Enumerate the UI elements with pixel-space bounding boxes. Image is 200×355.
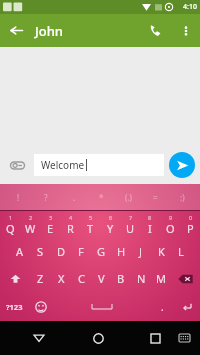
button[interactable]: ? — [32, 184, 60, 211]
staticText: O — [166, 221, 175, 236]
button[interactable]: 3 — [40, 211, 60, 238]
button[interactable]: 1 — [0, 211, 20, 238]
staticText: P — [187, 221, 194, 236]
button[interactable]: Send — [164, 146, 200, 184]
button[interactable]: Call — [139, 14, 172, 47]
button[interactable]: H — [111, 238, 131, 265]
staticText: C — [78, 271, 85, 286]
button[interactable]: (.) — [115, 184, 142, 211]
staticText: 7 — [129, 214, 133, 221]
button[interactable]: V — [91, 265, 111, 292]
button[interactable]: 5 — [80, 211, 100, 238]
staticText: Welcome — [41, 158, 85, 172]
button[interactable]: Shift — [0, 265, 30, 292]
button[interactable]: Enter — [174, 292, 200, 321]
button[interactable]: Back — [22, 321, 56, 355]
staticText: :) — [180, 192, 185, 203]
button[interactable]: D — [51, 238, 71, 265]
staticText: John — [35, 22, 64, 40]
button[interactable]: Attach — [0, 148, 34, 182]
staticText: M — [156, 271, 166, 286]
button[interactable]: * — [88, 184, 115, 211]
staticText: 0 — [189, 214, 193, 221]
staticText: X — [58, 271, 65, 286]
staticText: G — [97, 244, 106, 259]
staticText: T — [87, 221, 94, 236]
staticText: . — [161, 300, 164, 314]
staticText: K — [158, 244, 165, 259]
staticText: W — [25, 221, 36, 236]
staticText: * — [99, 192, 104, 203]
button[interactable]: . — [60, 184, 88, 211]
staticText: B — [117, 271, 125, 286]
staticText: L — [178, 244, 184, 259]
staticText: Z — [37, 271, 44, 286]
button[interactable]: J — [131, 238, 151, 265]
button[interactable]: Backspace — [171, 265, 200, 292]
staticText: ? — [44, 192, 48, 203]
button[interactable]: 0 — [180, 211, 200, 238]
staticText: . — [73, 192, 76, 203]
staticText: 8 — [148, 214, 152, 221]
staticText: 1 — [9, 214, 13, 221]
button[interactable]: . — [150, 292, 174, 321]
staticText: D — [57, 244, 66, 259]
button[interactable]: S — [30, 238, 51, 265]
staticText: S — [37, 244, 44, 259]
button[interactable]: L — [171, 238, 191, 265]
staticText: E — [47, 221, 54, 236]
button[interactable]: A — [9, 238, 30, 265]
staticText: N — [137, 271, 146, 286]
button[interactable]: Switch keyboard — [170, 324, 198, 352]
button[interactable]: Welcome — [34, 154, 164, 176]
staticText: 4 — [69, 214, 73, 221]
button[interactable]: N — [131, 265, 151, 292]
button[interactable]: ! — [4, 184, 32, 211]
staticText: Y — [107, 221, 114, 236]
staticText: R — [67, 221, 74, 236]
button[interactable]: F — [71, 238, 91, 265]
staticText: (.) — [125, 192, 132, 203]
staticText: Q — [6, 221, 15, 236]
staticText: A — [16, 244, 24, 259]
button[interactable]: C — [71, 265, 91, 292]
button[interactable]: K — [151, 238, 171, 265]
button[interactable]: X — [51, 265, 71, 292]
staticText: = — [153, 192, 158, 203]
staticText: 3 — [49, 214, 53, 221]
button[interactable]: Home — [81, 321, 115, 355]
staticText: 4:10 — [183, 2, 197, 12]
button[interactable]: M — [151, 265, 171, 292]
staticText: H — [117, 244, 126, 259]
button[interactable]: = — [142, 184, 169, 211]
button[interactable]: ?123 — [0, 292, 29, 321]
button[interactable]: G — [91, 238, 111, 265]
button[interactable]: 6 — [100, 211, 120, 238]
button[interactable]: Recents — [140, 323, 170, 353]
staticText: I — [148, 221, 152, 236]
staticText: 9 — [169, 214, 173, 221]
button[interactable]: 4 — [60, 211, 80, 238]
staticText: F — [78, 244, 84, 259]
button[interactable]: 9 — [160, 211, 180, 238]
button[interactable]: B — [111, 265, 131, 292]
button[interactable]: Space — [53, 292, 150, 321]
button[interactable]: 2 — [20, 211, 40, 238]
staticText: ?123 — [6, 302, 23, 312]
staticText: ! — [17, 192, 20, 203]
button[interactable]: More options — [172, 17, 200, 45]
staticText: 5 — [89, 214, 93, 221]
button[interactable]: Back — [0, 14, 33, 47]
staticText: 6 — [109, 214, 113, 221]
staticText: 2 — [29, 214, 33, 221]
button[interactable]: 8 — [140, 211, 160, 238]
staticText: V — [98, 271, 105, 286]
button[interactable]: Z — [30, 265, 51, 292]
button[interactable]: 7 — [120, 211, 140, 238]
button[interactable]: :) — [169, 184, 196, 211]
button[interactable]: Emoji — [29, 292, 53, 321]
staticText: U — [126, 221, 135, 236]
staticText: J — [139, 244, 143, 259]
